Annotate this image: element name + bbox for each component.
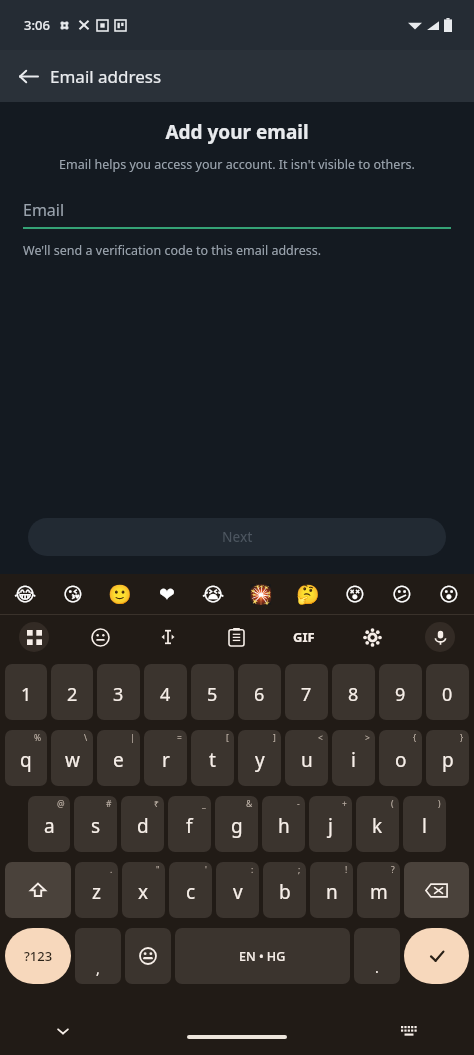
button[interactable]: " xyxy=(122,862,165,918)
button[interactable]: . xyxy=(75,862,118,918)
staticText: 7 xyxy=(301,682,312,707)
staticText: 🎇 xyxy=(249,583,273,605)
button[interactable]: Emoji xyxy=(67,615,134,659)
staticText: n xyxy=(326,879,338,905)
staticText: o xyxy=(395,747,407,773)
button[interactable]: 😂 xyxy=(2,574,49,614)
button[interactable]: Comma xyxy=(75,928,121,984)
button[interactable]: | xyxy=(97,730,140,786)
button[interactable]: 😕 xyxy=(378,574,425,614)
staticText: 🤔 xyxy=(296,583,320,605)
button[interactable]: 🎇 xyxy=(237,574,284,614)
button[interactable]: # xyxy=(74,796,117,852)
button[interactable]: Back xyxy=(10,58,46,94)
staticText: " xyxy=(156,864,160,876)
button[interactable]: 7 xyxy=(285,664,328,720)
staticText: 1 xyxy=(21,682,32,707)
staticText: ₹ xyxy=(154,798,159,810)
staticText: q xyxy=(20,747,32,773)
button[interactable]: ❤️ xyxy=(143,574,190,614)
button[interactable]: Hide keyboard xyxy=(48,1016,78,1046)
button[interactable]: > xyxy=(332,730,375,786)
button[interactable]: } xyxy=(426,730,469,786)
button[interactable]: - xyxy=(262,796,305,852)
staticText: Next xyxy=(222,528,253,546)
button[interactable]: 😮 xyxy=(425,574,472,614)
button[interactable]: ; xyxy=(263,862,306,918)
button[interactable]: 😘 xyxy=(49,574,96,614)
button[interactable]: Next xyxy=(28,518,446,556)
button[interactable]: % xyxy=(5,730,47,786)
button[interactable]: < xyxy=(285,730,328,786)
button[interactable]: 🙂 xyxy=(96,574,143,614)
staticText: > xyxy=(365,732,370,744)
button[interactable]: Emoji xyxy=(125,928,171,984)
button[interactable]: Enter xyxy=(404,928,469,984)
staticText: 😮 xyxy=(439,583,459,605)
button[interactable]: 0 xyxy=(426,664,469,720)
button[interactable]: ' xyxy=(169,862,212,918)
staticText: ) xyxy=(438,798,441,810)
staticText: We'll send a verification code to this e… xyxy=(23,242,322,259)
button[interactable]: + xyxy=(309,796,352,852)
button[interactable]: ? xyxy=(357,862,400,918)
staticText: ' xyxy=(205,864,207,876)
button[interactable]: @ xyxy=(28,796,70,852)
staticText: w xyxy=(65,747,80,773)
button[interactable]: 9 xyxy=(379,664,422,720)
staticText: 2 xyxy=(67,682,78,707)
button[interactable]: ( xyxy=(356,796,399,852)
staticText: 0 xyxy=(442,682,453,707)
button[interactable]: Settings xyxy=(338,615,406,659)
button[interactable]: Clipboard xyxy=(202,615,270,659)
button[interactable]: 😭 xyxy=(190,574,237,614)
button[interactable]: 1 xyxy=(5,664,47,720)
button[interactable]: 😵 xyxy=(331,574,378,614)
staticText: # xyxy=(106,798,112,810)
button[interactable]: ₹ xyxy=(121,796,164,852)
button[interactable]: 3 xyxy=(97,664,140,720)
button[interactable]: 4 xyxy=(144,664,187,720)
button[interactable]: 🤔 xyxy=(284,574,331,614)
staticText: 🙂 xyxy=(108,583,132,605)
staticText: c xyxy=(186,879,196,905)
button[interactable]: Text edit xyxy=(134,615,202,659)
button[interactable]: Switch keyboard xyxy=(396,1018,422,1044)
staticText: ( xyxy=(391,798,394,810)
staticText: a xyxy=(44,813,55,839)
staticText: Add your email xyxy=(0,119,474,145)
button[interactable]: ] xyxy=(238,730,281,786)
button[interactable]: : xyxy=(216,862,259,918)
staticText: & xyxy=(246,798,253,810)
staticText: 9 xyxy=(395,682,406,707)
button[interactable]: = xyxy=(144,730,187,786)
button[interactable]: 5 xyxy=(191,664,234,720)
button[interactable]: ?123 xyxy=(5,928,71,984)
button[interactable]: GIF xyxy=(270,615,338,659)
staticText: Email address xyxy=(50,65,162,88)
staticText: ! xyxy=(345,864,348,876)
staticText: 5 xyxy=(207,682,218,707)
button[interactable]: ) xyxy=(403,796,446,852)
button[interactable]: Backspace xyxy=(404,862,469,918)
staticText: y xyxy=(255,747,265,773)
button[interactable]: Period xyxy=(354,928,400,984)
staticText: GIF xyxy=(293,628,315,646)
button[interactable]: Shift xyxy=(5,862,71,918)
staticText: \ xyxy=(84,732,88,744)
button[interactable]: 8 xyxy=(332,664,375,720)
staticText: } xyxy=(460,732,464,744)
button[interactable]: 2 xyxy=(51,664,93,720)
button[interactable]: [ xyxy=(191,730,234,786)
button[interactable]: Voice input xyxy=(406,615,474,659)
button[interactable]: \ xyxy=(51,730,93,786)
button[interactable]: ! xyxy=(310,862,353,918)
staticText: . xyxy=(110,864,113,876)
button[interactable]: EN • HG xyxy=(175,928,350,984)
button[interactable]: & xyxy=(215,796,258,852)
button[interactable]: { xyxy=(379,730,422,786)
button[interactable]: Apps xyxy=(0,615,67,659)
button[interactable]: _ xyxy=(168,796,211,852)
staticText: ] xyxy=(273,732,276,744)
button[interactable]: 6 xyxy=(238,664,281,720)
